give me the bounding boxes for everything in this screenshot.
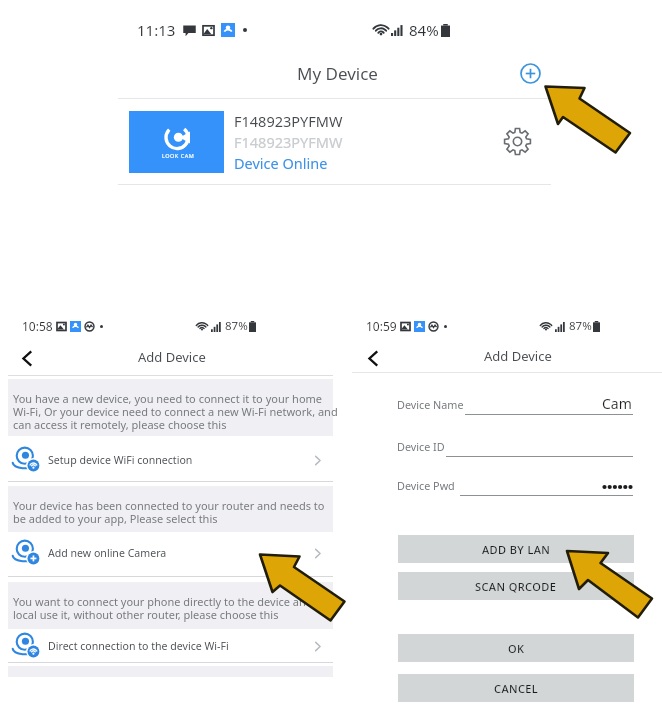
staticText: Your device has been connected to your r… <box>13 498 338 527</box>
staticText: 10:58 <box>22 318 53 334</box>
staticText: You have a new device, you need to conne… <box>13 391 338 433</box>
button[interactable]: Direct connection to the device Wi-Fi <box>8 623 333 674</box>
staticText: Device Online <box>234 153 328 173</box>
button[interactable]: Add new online Camera <box>8 530 333 581</box>
button[interactable]: Settings <box>502 126 532 156</box>
button[interactable]: SCAN QRCODE <box>398 572 634 600</box>
staticText: OK <box>508 641 525 656</box>
staticText: Device Name <box>397 397 464 412</box>
staticText: Device Pwd <box>397 478 455 493</box>
staticText: Cam <box>602 394 632 413</box>
staticText: 11:13 <box>137 20 176 40</box>
staticText: Add Device <box>484 347 552 365</box>
staticText: 10:59 <box>366 318 397 334</box>
button[interactable]: OK <box>398 634 634 662</box>
button[interactable]: Add device <box>517 60 543 86</box>
button[interactable]: LOOK CAM <box>118 99 551 184</box>
staticText: 87% <box>225 318 248 334</box>
staticText: F148923PYFMW <box>234 132 343 152</box>
staticText: 87% <box>569 318 592 334</box>
button[interactable]: Setup device WiFi connection <box>8 437 333 488</box>
button[interactable]: Back <box>12 343 42 373</box>
staticText: You want to connect your phone directly … <box>13 594 338 623</box>
staticText: ADD BY LAN <box>482 542 551 557</box>
staticText: Device ID <box>397 439 445 454</box>
staticText: LOOK CAM <box>162 152 195 159</box>
staticText: Add Device <box>138 348 206 366</box>
staticText: 84% <box>409 20 439 40</box>
staticText: SCAN QRCODE <box>475 579 557 594</box>
staticText: Direct connection to the device Wi-Fi <box>48 639 229 653</box>
staticText: My Device <box>297 62 378 85</box>
staticText: Setup device WiFi connection <box>48 453 193 467</box>
staticText: CANCEL <box>494 681 539 696</box>
staticText: F148923PYFMW <box>234 111 343 131</box>
button[interactable]: ADD BY LAN <box>398 535 634 563</box>
button[interactable]: Back <box>358 343 388 373</box>
staticText: Add new online Camera <box>48 546 167 560</box>
button[interactable]: CANCEL <box>398 674 634 702</box>
